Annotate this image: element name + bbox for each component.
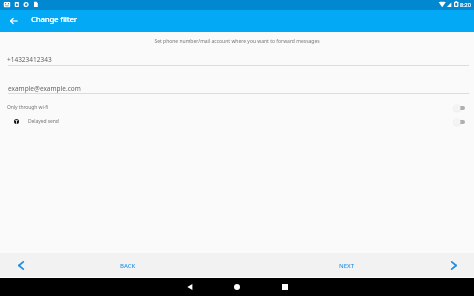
staticText: BACK [120,262,136,270]
button[interactable]: Only through wi-fi [0,100,474,115]
button[interactable]: BACK [100,253,155,278]
button[interactable]: NEXT [319,253,374,278]
button[interactable]: +14323412343 [8,50,469,66]
staticText: NEXT [339,262,355,270]
staticText: 8:20 [460,1,471,8]
button[interactable]: Recent apps [276,278,293,296]
button[interactable]: Back [3,10,25,32]
staticText: Change filter [31,14,77,25]
button[interactable]: Delayed send [0,114,474,129]
button[interactable]: Home [228,278,245,296]
button[interactable]: Next [436,253,471,278]
button[interactable]: Previous [3,253,38,278]
staticText: example@example.com [8,84,81,93]
staticText: Delayed send [28,118,59,125]
button[interactable]: example@example.com [8,78,469,94]
staticText: Only through wi-fi [7,104,49,111]
staticText: Set phone number/mail account where you … [0,38,474,45]
staticText: +14323412343 [7,55,52,64]
button[interactable]: Back [181,278,198,296]
